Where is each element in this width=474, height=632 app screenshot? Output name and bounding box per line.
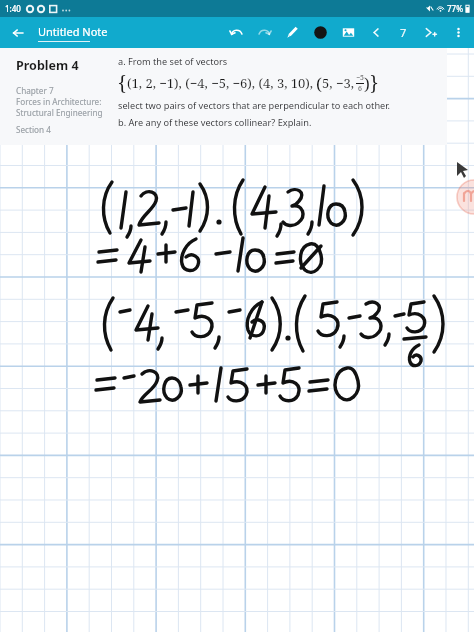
staticText: select two pairs of vectors that are per… bbox=[118, 99, 391, 112]
staticText: ) bbox=[364, 72, 370, 95]
button[interactable]: Pen bbox=[278, 17, 306, 48]
staticText: Section 4 bbox=[16, 124, 51, 135]
staticText: Untitled Note bbox=[38, 24, 108, 39]
staticText: 6 bbox=[358, 84, 362, 94]
staticText: Chapter 7 bbox=[16, 85, 54, 96]
button[interactable]: 7 bbox=[390, 17, 416, 48]
staticText: { bbox=[118, 70, 127, 96]
staticText: Forces in Architecture: bbox=[16, 96, 102, 107]
button[interactable]: Next page bbox=[416, 17, 444, 48]
staticText: 7 bbox=[400, 25, 407, 40]
button[interactable]: Back bbox=[5, 20, 31, 46]
staticText: 1:40 bbox=[5, 3, 21, 14]
button[interactable]: Insert image bbox=[334, 17, 362, 48]
staticText: −5 bbox=[356, 73, 364, 83]
staticText: Problem 4 bbox=[16, 57, 79, 74]
staticText: (1, 2, −1), (−4, −5, −6), (4, 3, 10), bbox=[127, 74, 314, 92]
staticText: 77% bbox=[447, 3, 463, 14]
button[interactable]: Redo bbox=[250, 17, 278, 48]
staticText: ( bbox=[316, 72, 322, 95]
button[interactable]: Untitled Note bbox=[38, 24, 108, 42]
staticText: } bbox=[370, 70, 379, 96]
staticText: b. Are any of these vectors collinear? E… bbox=[118, 116, 312, 129]
staticText: a. From the set of vectors bbox=[118, 55, 228, 68]
staticText: 5, −3, bbox=[322, 74, 354, 92]
button[interactable]: More options bbox=[444, 17, 472, 48]
button[interactable]: Brush colour bbox=[306, 17, 334, 48]
staticText: Structural Engineering bbox=[16, 107, 103, 118]
button[interactable]: Undo bbox=[222, 17, 250, 48]
button[interactable]: Previous page bbox=[362, 17, 390, 48]
